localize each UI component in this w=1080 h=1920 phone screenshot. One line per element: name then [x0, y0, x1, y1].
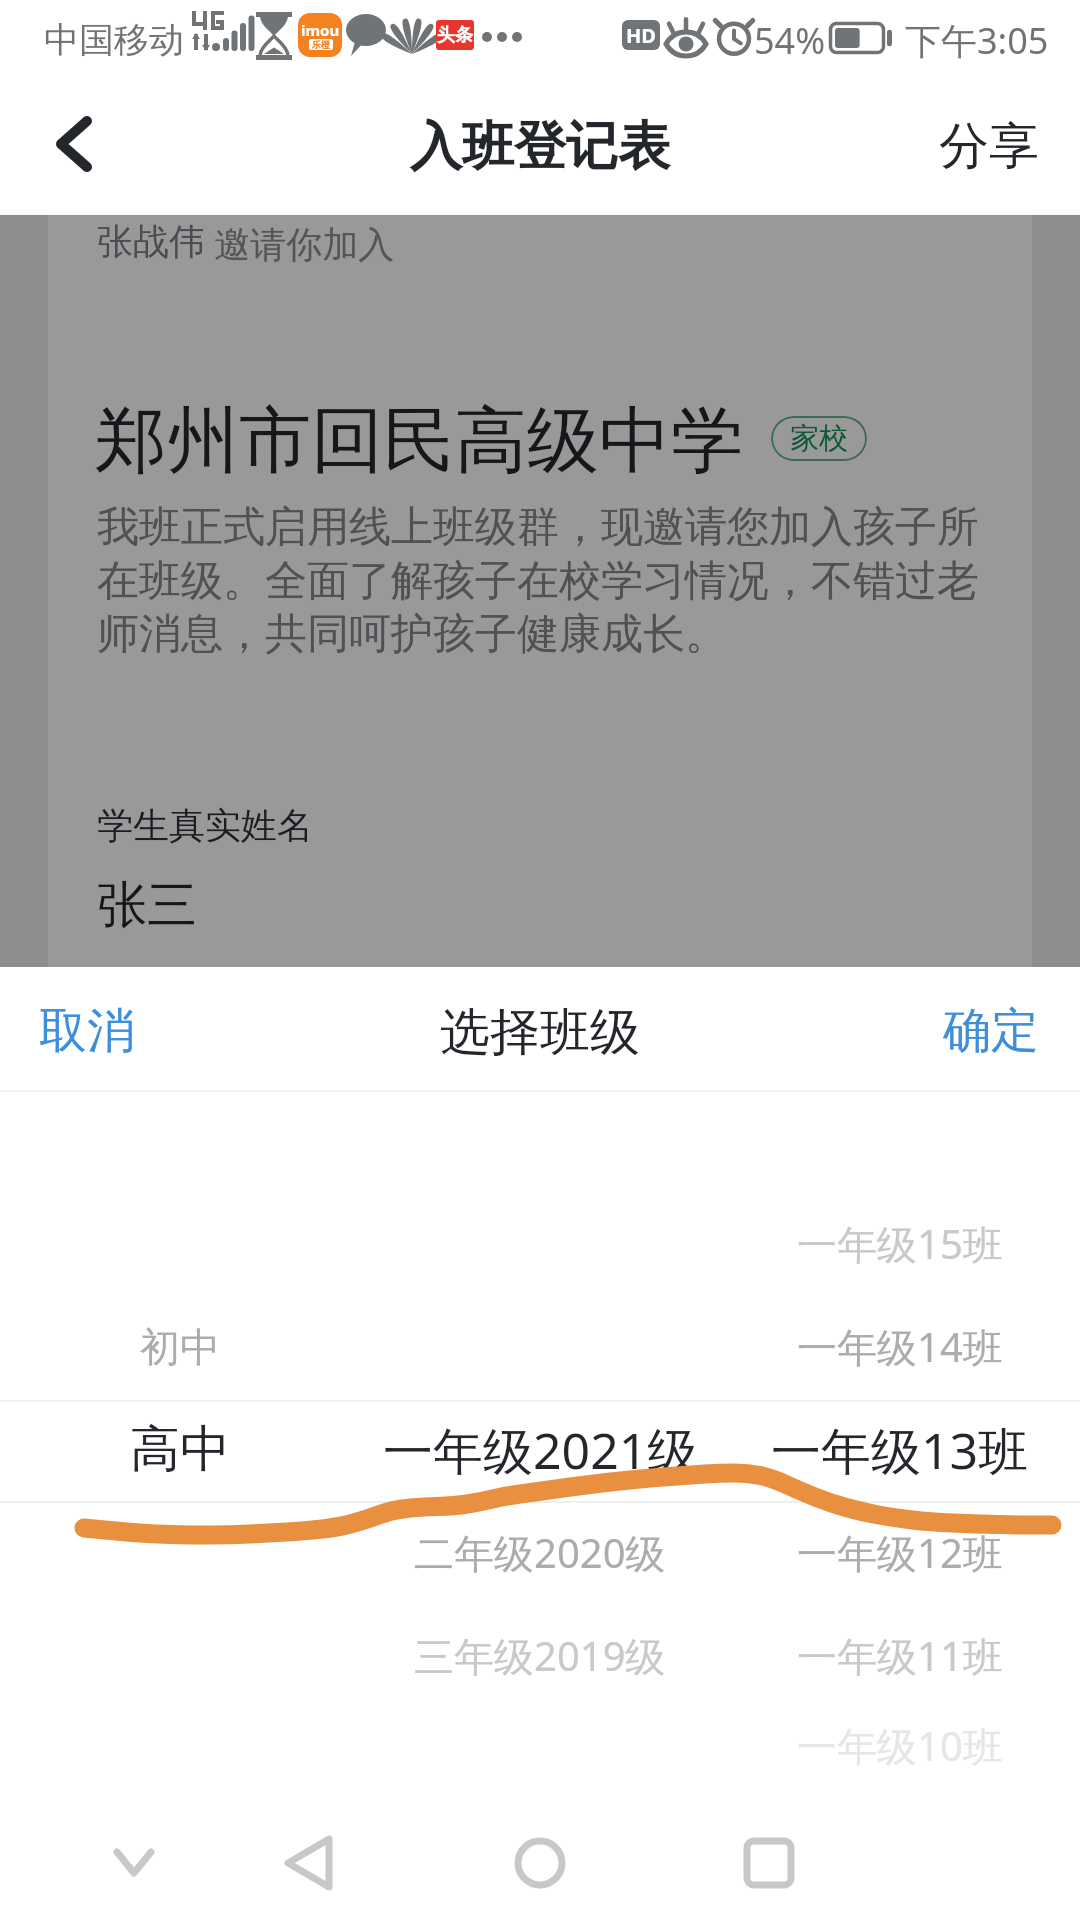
staticText: 郑州市回民高级中学: [95, 396, 743, 487]
staticText: 张三: [97, 874, 197, 937]
button[interactable]: 选择班级: [400, 967, 680, 1090]
button[interactable]: Hide keyboard: [84, 1813, 184, 1913]
staticText: 初中: [140, 1322, 220, 1372]
staticText: 确定: [943, 1001, 1039, 1056]
staticText: 头条: [437, 24, 473, 47]
staticText: 54%: [754, 16, 826, 65]
staticText: 二年级2020级: [414, 1525, 666, 1580]
staticText: 三年级2019级: [414, 1628, 666, 1683]
button[interactable]: [0, 1501, 360, 1604]
button[interactable]: 一年级12班: [720, 1501, 1080, 1604]
staticText: 一年级11班: [797, 1628, 1003, 1683]
staticText: 一年级14班: [797, 1319, 1003, 1374]
staticText: 一年级10班: [797, 1718, 1003, 1773]
staticText: 学生真实姓名: [97, 803, 313, 848]
staticText: 我班正式启用线上班级群，现邀请您加入孩子所在班级。全面了解孩子在校学习情况，不错…: [97, 501, 989, 660]
staticText: 一年级12班: [797, 1525, 1003, 1580]
staticText: 家校: [790, 420, 848, 457]
button[interactable]: 初中: [0, 1295, 360, 1398]
staticText: imou: [301, 20, 340, 40]
button[interactable]: Recents: [719, 1813, 819, 1913]
staticText: HD: [626, 22, 656, 49]
button[interactable]: 确定: [902, 967, 1080, 1090]
button[interactable]: 一年级2021级: [360, 1398, 720, 1501]
button[interactable]: 分享: [898, 85, 1080, 208]
staticText: 一年级2021级: [383, 1416, 698, 1484]
staticText: 中国移动: [44, 18, 184, 62]
button[interactable]: 三年级2019级: [360, 1604, 720, 1707]
staticText: 入班登记表: [410, 114, 670, 180]
staticText: 一年级13班: [771, 1416, 1029, 1484]
button[interactable]: 二年级2020级: [360, 1501, 720, 1604]
staticText: 分享: [939, 115, 1039, 178]
button[interactable]: 入班登记表: [380, 84, 700, 210]
button[interactable]: Back: [36, 94, 124, 198]
button[interactable]: 一年级13班: [720, 1398, 1080, 1501]
staticText: 下午3:05: [905, 16, 1049, 65]
button[interactable]: 一年级10班: [720, 1707, 1080, 1784]
button[interactable]: 一年级14班: [720, 1295, 1080, 1398]
staticText: 高中: [130, 1418, 230, 1481]
button[interactable]: 取消: [0, 967, 174, 1090]
button[interactable]: 一年级15班: [720, 1192, 1080, 1295]
staticText: 选择班级: [440, 1001, 640, 1056]
button[interactable]: Back: [259, 1813, 359, 1913]
staticText: 张战伟: [97, 219, 205, 264]
button[interactable]: Home: [490, 1813, 590, 1913]
button[interactable]: 一年级11班: [720, 1604, 1080, 1707]
staticText: 取消: [39, 1001, 135, 1056]
staticText: 乐橙: [312, 39, 330, 50]
staticText: 邀请你加入: [205, 219, 395, 268]
staticText: 一年级15班: [797, 1216, 1003, 1271]
button[interactable]: 高中: [0, 1398, 360, 1501]
